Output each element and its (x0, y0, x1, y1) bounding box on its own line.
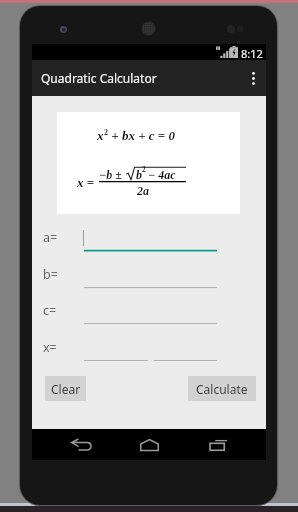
staticText: b= (43, 266, 58, 283)
button[interactable]: Calculate (188, 376, 256, 401)
staticText: −b ± (99, 168, 122, 181)
staticText: + bx + c = 0 (108, 128, 175, 142)
staticText: a= (43, 229, 58, 246)
button[interactable]: c= (32, 302, 266, 336)
staticText: Quadratic Calculator (41, 70, 157, 86)
staticText: 8:12 (241, 46, 263, 61)
staticText: 2 (142, 165, 146, 173)
button[interactable]: x= (32, 339, 266, 373)
staticText: Calculate (196, 381, 248, 397)
staticText: Clear (51, 381, 81, 397)
staticText: − 4ac (148, 168, 176, 181)
button[interactable]: a= (32, 229, 266, 263)
button[interactable]: b= (32, 266, 266, 300)
button[interactable]: Back (61, 429, 101, 460)
staticText: x (97, 128, 104, 142)
button[interactable]: Clear (45, 376, 86, 401)
staticText: b (136, 168, 142, 181)
button[interactable]: Home (129, 429, 169, 460)
staticText: c= (43, 302, 57, 319)
staticText: x= (43, 339, 57, 356)
button[interactable]: More options (240, 60, 266, 96)
button[interactable]: Recents (198, 429, 238, 460)
staticText: x = (77, 175, 95, 189)
staticText: 2a (137, 184, 149, 197)
staticText: 2 (104, 128, 108, 137)
